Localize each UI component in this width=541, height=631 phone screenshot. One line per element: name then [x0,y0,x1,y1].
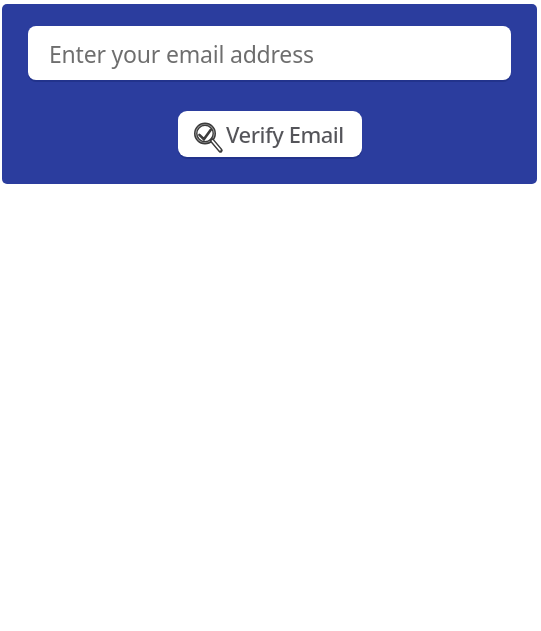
button[interactable]: Enter your email address [28,26,511,80]
staticText: Enter your email address [49,38,314,69]
staticText: Verify Email [226,119,344,149]
button[interactable]: Verify Email [178,111,362,157]
